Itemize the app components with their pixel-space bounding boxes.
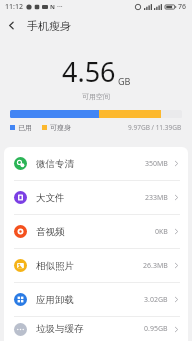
staticText: ··· [57,2,63,12]
staticText: 可用空间 [82,92,110,101]
staticText: 76 [178,2,187,12]
staticText: 相似照片 [36,260,74,272]
button[interactable]: Back [0,14,23,37]
staticText: 11:12 [5,2,23,12]
button[interactable]: 音视频 [4,215,188,248]
staticText: 4.56 [62,53,116,90]
button[interactable]: 微信专清 [4,147,188,180]
button[interactable]: 垃圾与缓存 [4,317,188,341]
staticText: GB [118,75,131,87]
button[interactable]: 应用卸载 [4,283,188,316]
staticText: 已用 [18,123,32,132]
staticText: 应用卸载 [36,294,74,306]
staticText: 350MB [145,159,168,169]
staticText: 微信专清 [36,158,74,170]
staticText: 手机瘦身 [27,19,71,33]
staticText: 3.02GB [144,295,168,305]
staticText: 233MB [145,193,168,203]
staticText: 大文件 [36,192,65,204]
staticText: 26.3MB [143,261,168,271]
staticText: 9.97GB / 11.39GB [128,123,182,132]
staticText: 可瘦身 [50,123,71,132]
staticText: 0KB [155,227,168,237]
staticText: N [50,3,55,11]
button[interactable]: 大文件 [4,181,188,214]
staticText: 垃圾与缓存 [36,323,84,335]
staticText: 0.95GB [144,324,168,334]
button[interactable]: 相似照片 [4,249,188,282]
staticText: 音视频 [36,226,65,238]
